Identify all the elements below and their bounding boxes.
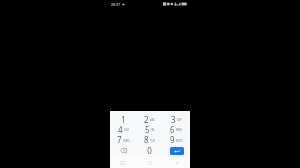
button[interactable]: Backspace xyxy=(110,145,136,156)
button[interactable]: Home xyxy=(136,157,163,168)
staticText: JKL xyxy=(151,128,155,132)
staticText: 0 xyxy=(147,145,152,156)
button[interactable]: 1 xyxy=(110,114,136,124)
staticText: WXYZ xyxy=(176,139,183,143)
button[interactable]: 8 xyxy=(136,134,163,145)
staticText: 1 xyxy=(121,114,126,124)
staticText: 20:37 xyxy=(111,2,120,7)
button[interactable]: 4 xyxy=(110,124,136,134)
staticText: 2 xyxy=(144,114,149,124)
button[interactable]: Recents xyxy=(110,157,136,168)
button[interactable]: 9 xyxy=(163,134,190,145)
staticText: 9 xyxy=(170,134,175,145)
staticText: 4 xyxy=(118,124,123,134)
staticText: PQRS xyxy=(123,139,130,143)
button[interactable]: Back xyxy=(163,157,190,168)
button[interactable]: 7 xyxy=(110,134,136,145)
staticText: GHI xyxy=(124,128,129,132)
button[interactable]: 6 xyxy=(163,124,190,134)
other: Backspace xyxy=(120,148,127,153)
staticText: TUV xyxy=(150,139,155,143)
button[interactable]: Enter xyxy=(170,147,184,155)
staticText: 8 xyxy=(144,134,149,145)
staticText: 3 xyxy=(171,114,176,124)
staticText: ABC xyxy=(150,118,155,122)
button[interactable]: 3 xyxy=(163,114,190,124)
button[interactable]: 0 xyxy=(136,145,163,156)
button[interactable]: 5 xyxy=(136,124,163,134)
staticText: 5 xyxy=(145,124,150,134)
staticText: 6 xyxy=(170,124,175,134)
staticText: 7 xyxy=(117,134,122,145)
button[interactable]: 2 xyxy=(136,114,163,124)
staticText: DEF xyxy=(177,118,182,122)
staticText: MNO xyxy=(176,128,183,132)
